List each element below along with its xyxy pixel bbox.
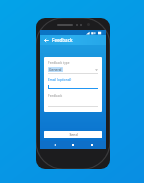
button[interactable] [48, 85, 98, 89]
staticText: General [49, 67, 62, 72]
staticText: Send [69, 132, 78, 137]
button[interactable]: Back [51, 141, 59, 149]
staticText: Feedback type [48, 61, 70, 65]
button[interactable]: Back [42, 36, 50, 44]
staticText: Feedback [52, 37, 73, 43]
staticText: Email (optional) [48, 78, 72, 82]
button[interactable]: Home [69, 141, 77, 149]
staticText: Feedback [48, 94, 63, 98]
button[interactable]: Recent apps [88, 141, 96, 149]
button[interactable]: General [48, 67, 98, 72]
button[interactable]: Send [44, 131, 102, 138]
